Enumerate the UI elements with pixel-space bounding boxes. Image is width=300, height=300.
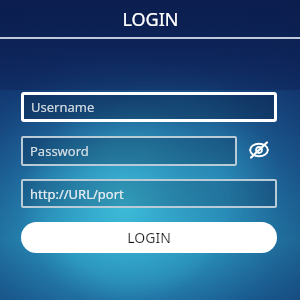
staticText: LOGIN [122,7,179,32]
button[interactable]: http://URL/port [21,179,277,208]
button[interactable]: Password [21,136,237,166]
staticText: http://URL/port [30,185,124,203]
staticText: Password [30,142,89,160]
staticText: LOGIN [127,228,171,247]
button[interactable]: Show password [244,135,274,165]
button[interactable]: Username [24,95,274,119]
button[interactable]: LOGIN [21,222,277,253]
staticText: Username [31,98,95,116]
